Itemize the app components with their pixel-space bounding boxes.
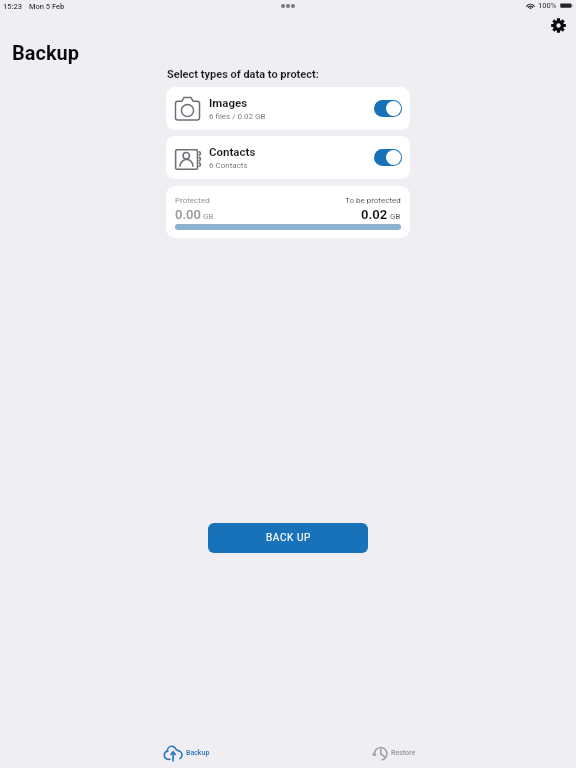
staticText: 15:23	[3, 2, 23, 11]
staticText: 0.00	[175, 207, 201, 222]
staticText: GB	[203, 212, 214, 221]
staticText: To be protected	[345, 196, 401, 205]
staticText: Images	[209, 96, 248, 109]
staticText: Backup	[12, 41, 80, 64]
staticText: 6 Contacts	[209, 161, 248, 170]
staticText: GB	[390, 212, 401, 221]
button[interactable]: Settings	[545, 12, 571, 38]
staticText: Contacts	[209, 145, 256, 158]
staticText: BACK UP	[266, 532, 311, 544]
staticText: 0.02	[361, 207, 388, 222]
button[interactable]: Toggle Contacts backup	[374, 149, 402, 166]
staticText: 100%	[538, 1, 557, 10]
staticText: Select types of data to protect:	[167, 68, 319, 81]
button[interactable]: Backup	[161, 741, 212, 765]
button[interactable]: Toggle Images backup	[374, 100, 402, 117]
button[interactable]: BACK UP	[208, 523, 368, 553]
button[interactable]: Restore	[368, 742, 418, 764]
staticText: Mon 5 Feb	[29, 2, 65, 11]
staticText: Protected	[175, 196, 210, 205]
staticText: 6 files / 0.02 GB	[209, 112, 266, 121]
staticText: Backup	[186, 749, 210, 757]
staticText: Restore	[391, 749, 416, 757]
button[interactable]: Images	[166, 87, 410, 130]
button[interactable]: Contacts	[166, 136, 410, 179]
